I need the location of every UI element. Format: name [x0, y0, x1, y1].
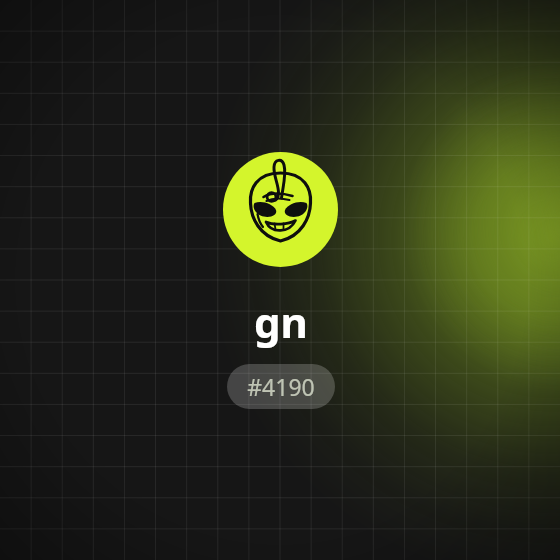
staticText: gn	[254, 293, 308, 350]
button[interactable]: Alien avatar	[223, 152, 338, 267]
button[interactable]: #4190	[227, 364, 335, 409]
staticText: #4190	[247, 371, 315, 402]
